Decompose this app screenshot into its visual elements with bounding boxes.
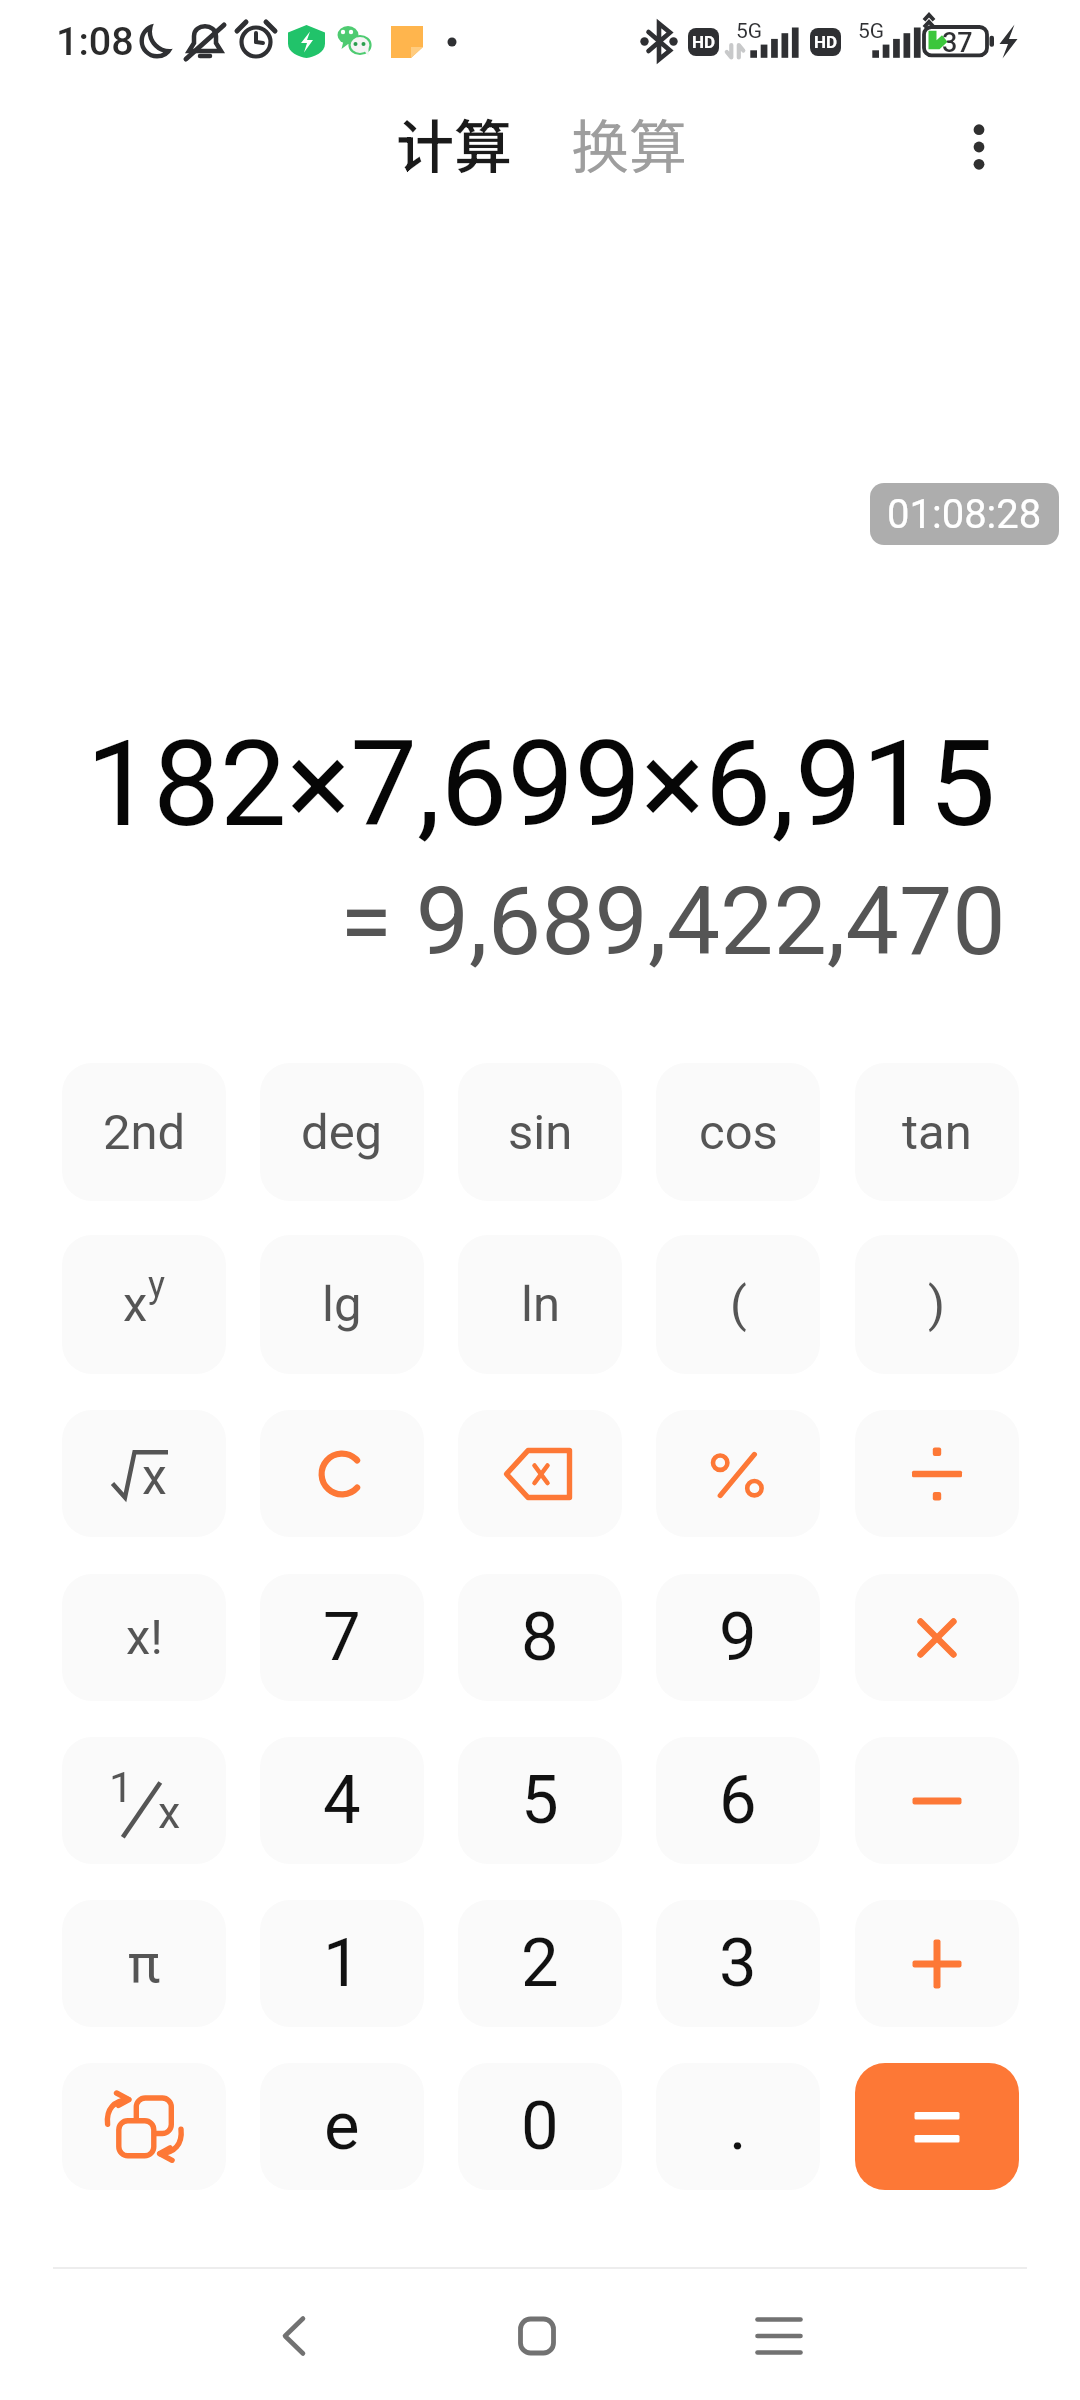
staticText: e — [324, 2087, 360, 2166]
button[interactable]: 2nd — [62, 1063, 226, 1201]
button[interactable]: 3 — [656, 1900, 820, 2027]
staticText: 8 — [521, 1598, 559, 1677]
button[interactable]: Plus — [855, 1900, 1019, 2027]
button[interactable]: cos — [656, 1063, 820, 1201]
staticText: x — [158, 1786, 181, 1839]
staticText: 6 — [719, 1761, 757, 1840]
staticText: 5 — [521, 1761, 559, 1840]
button[interactable]: Percent — [656, 1410, 820, 1537]
button[interactable]: Recent apps — [719, 2276, 839, 2396]
button[interactable]: Clear — [260, 1410, 424, 1537]
button[interactable]: lg — [260, 1235, 424, 1374]
button[interactable]: More options — [930, 98, 1028, 196]
staticText: y — [148, 1264, 166, 1306]
staticText: 9 — [719, 1598, 757, 1677]
button[interactable]: ln — [458, 1235, 622, 1374]
button[interactable]: 4 — [260, 1737, 424, 1864]
staticText: 2nd — [103, 1104, 186, 1161]
staticText: sin — [508, 1104, 573, 1161]
staticText: 换算 — [571, 101, 688, 185]
staticText: HD — [692, 32, 716, 52]
staticText: cos — [699, 1104, 778, 1161]
button[interactable]: 2 — [458, 1900, 622, 2027]
staticText: π — [128, 1932, 161, 1995]
button[interactable]: tan — [855, 1063, 1019, 1201]
staticText: deg — [301, 1104, 383, 1161]
button[interactable]: 6 — [656, 1737, 820, 1864]
staticText: 4 — [323, 1761, 361, 1840]
staticText: = 9,689,422,470 — [340, 866, 1006, 977]
button[interactable]: π — [62, 1900, 226, 2027]
button[interactable]: Unit converter — [62, 2063, 226, 2190]
button[interactable]: 9 — [656, 1574, 820, 1701]
button[interactable]: 1 — [260, 1900, 424, 2027]
staticText: 计算 — [396, 101, 513, 185]
staticText: 5G — [736, 19, 763, 44]
staticText: 0 — [521, 2087, 559, 2166]
button[interactable]: Minus — [855, 1737, 1019, 1864]
staticText: 3 — [719, 1924, 757, 2003]
button[interactable]: 8 — [458, 1574, 622, 1701]
staticText: x! — [126, 1609, 163, 1666]
staticText: 37 — [942, 27, 973, 59]
button[interactable]: Multiply — [855, 1574, 1019, 1701]
staticText: 1:08 — [56, 18, 134, 64]
staticText: . — [729, 2087, 747, 2166]
button[interactable]: x! — [62, 1574, 226, 1701]
button[interactable]: Backspace — [458, 1410, 622, 1537]
button[interactable]: 5 — [458, 1737, 622, 1864]
staticText: x — [142, 1448, 167, 1507]
staticText: ( — [730, 1276, 747, 1333]
button[interactable]: Reciprocal — [62, 1737, 226, 1864]
button[interactable]: 换算 — [551, 85, 708, 201]
staticText: 01:08:28 — [887, 491, 1042, 538]
button[interactable]: Home — [477, 2276, 597, 2396]
staticText: 182×7,699×6,915 — [86, 715, 996, 854]
button[interactable]: deg — [260, 1063, 424, 1201]
staticText: tan — [902, 1104, 972, 1161]
button[interactable]: 计算 — [376, 85, 533, 201]
staticText: lg — [322, 1276, 362, 1333]
staticText: ln — [521, 1276, 560, 1333]
button[interactable]: e — [260, 2063, 424, 2190]
staticText: 1 — [323, 1924, 361, 2003]
staticText: x — [123, 1276, 148, 1333]
staticText: 1 — [109, 1762, 134, 1812]
button[interactable]: x — [62, 1235, 226, 1374]
button[interactable]: 0 — [458, 2063, 622, 2190]
button[interactable]: ( — [656, 1235, 820, 1374]
button[interactable]: 7 — [260, 1574, 424, 1701]
staticText: 2 — [521, 1924, 559, 2003]
button[interactable]: Divide — [855, 1410, 1019, 1537]
button[interactable]: Equals — [855, 2063, 1019, 2190]
staticText: HD — [814, 32, 838, 52]
staticText: 5G — [858, 19, 885, 44]
button[interactable]: sin — [458, 1063, 622, 1201]
button[interactable]: . — [656, 2063, 820, 2190]
button[interactable]: ) — [855, 1235, 1019, 1374]
button[interactable]: Back — [234, 2276, 354, 2396]
button[interactable]: Square root — [62, 1410, 226, 1537]
staticText: ) — [928, 1276, 946, 1333]
staticText: 7 — [323, 1598, 361, 1677]
